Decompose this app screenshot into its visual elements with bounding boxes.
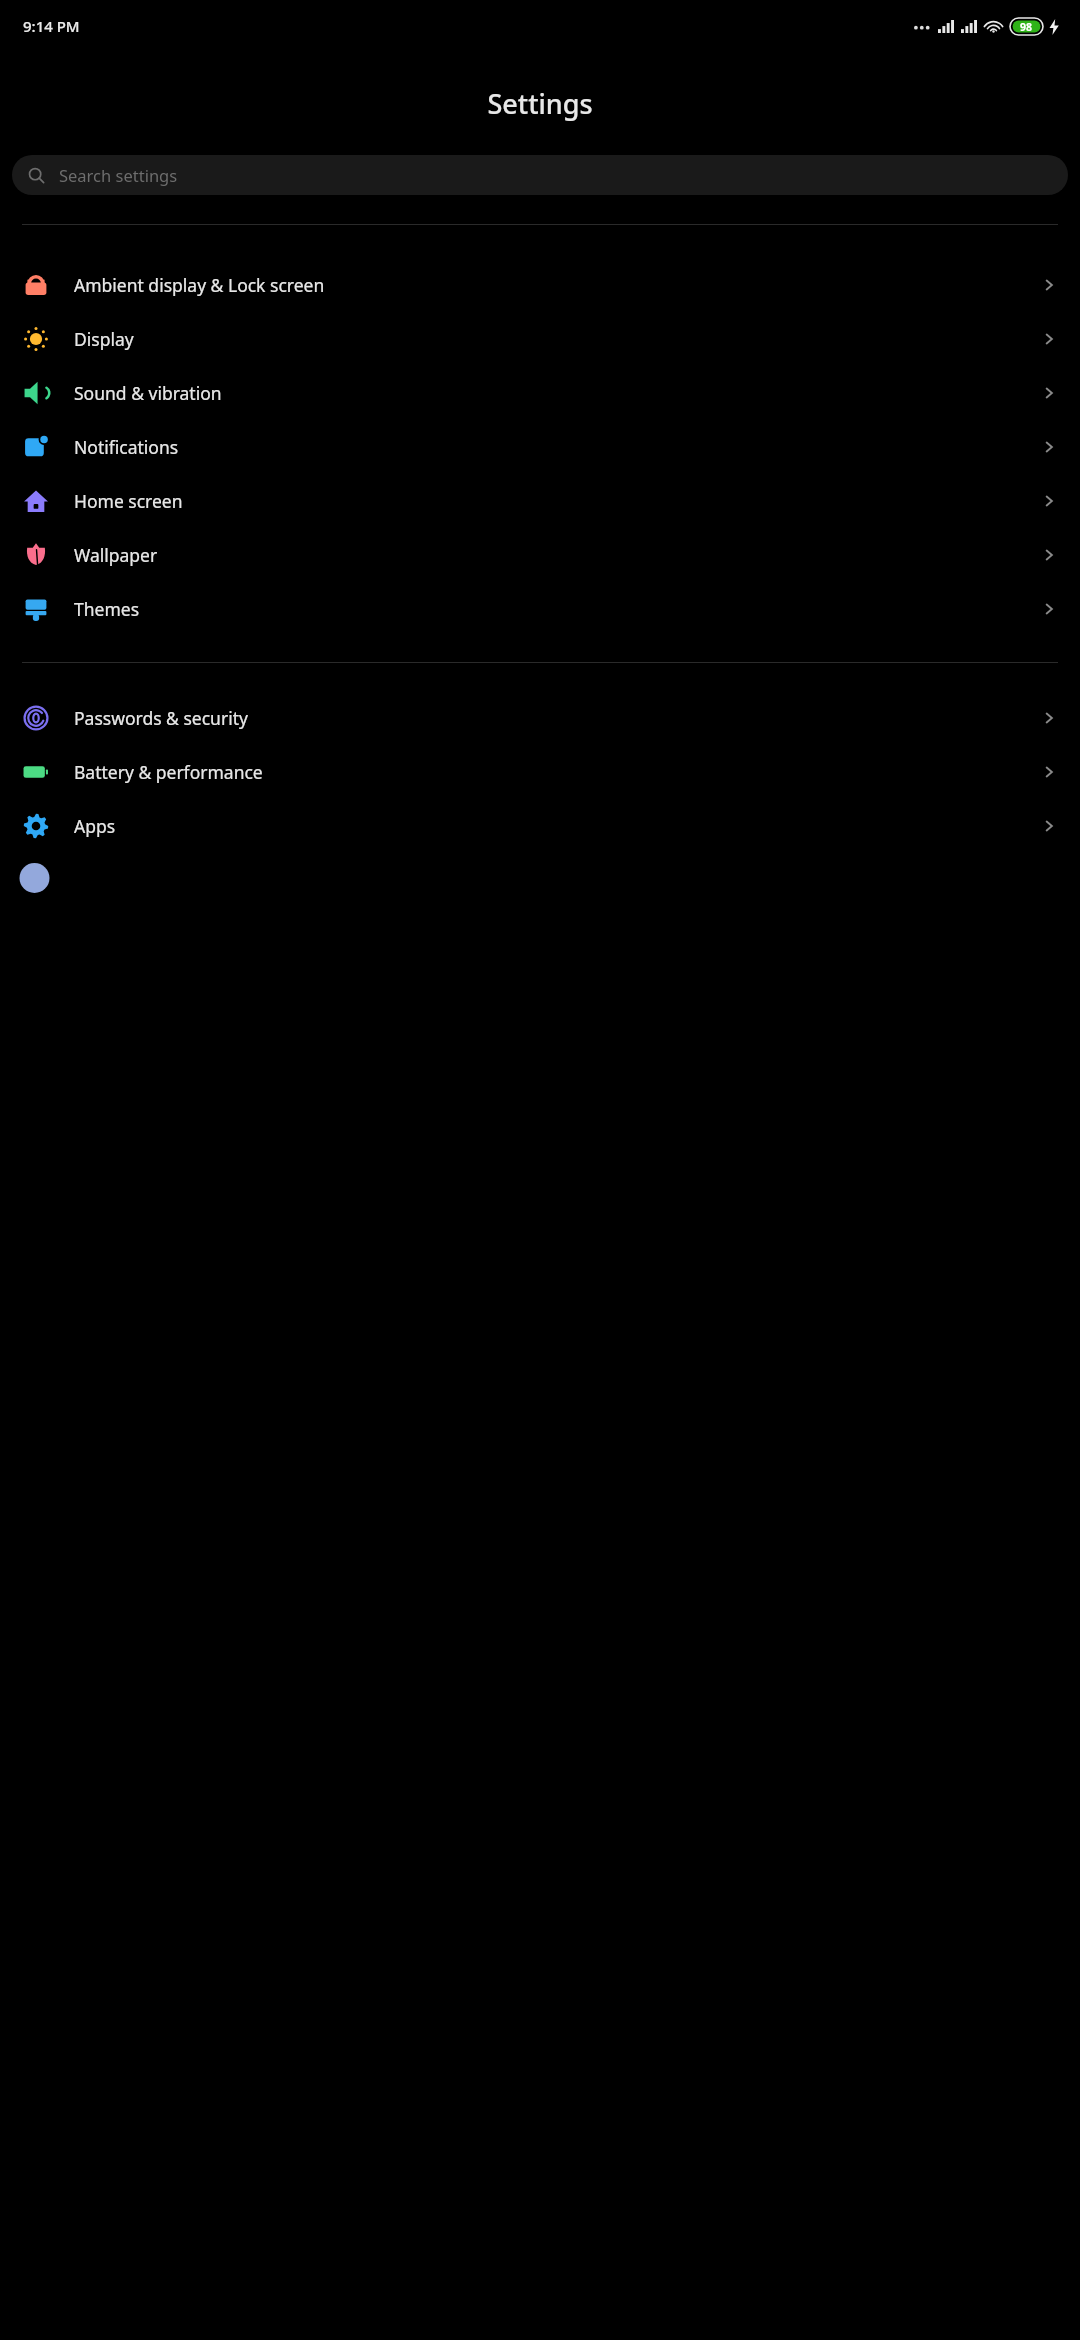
button[interactable]: Ambient display & Lock screen [0, 258, 1080, 312]
staticText: Themes [74, 597, 1040, 621]
staticText: 98 [1020, 20, 1033, 34]
staticText: Home screen [74, 489, 1040, 513]
button[interactable]: Themes [0, 582, 1080, 636]
button[interactable]: Passwords & security [0, 691, 1080, 745]
button[interactable]: Wallpaper [0, 528, 1080, 582]
staticText: Battery & performance [74, 760, 1040, 784]
staticText: Notifications [74, 435, 1040, 459]
staticText: Apps [74, 814, 1040, 838]
button[interactable]: Search settings [12, 155, 1068, 195]
button[interactable]: Notifications [0, 420, 1080, 474]
button[interactable]: Sound & vibration [0, 366, 1080, 420]
button[interactable]: Display [0, 312, 1080, 366]
staticText: Passwords & security [74, 706, 1040, 730]
staticText: Search settings [59, 164, 178, 186]
button[interactable]: Home screen [0, 474, 1080, 528]
button[interactable]: Battery & performance [0, 745, 1080, 799]
staticText: Display [74, 327, 1040, 351]
staticText: Settings [487, 85, 593, 122]
staticText: Ambient display & Lock screen [74, 273, 1040, 297]
button[interactable]: Apps [0, 799, 1080, 853]
staticText: 9:14 PM [23, 16, 80, 36]
staticText: Wallpaper [74, 543, 1040, 567]
staticText: Sound & vibration [74, 381, 1040, 405]
